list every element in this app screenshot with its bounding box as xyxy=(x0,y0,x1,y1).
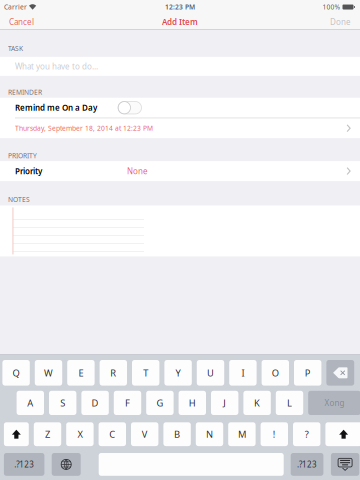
staticText: K xyxy=(254,397,260,409)
button[interactable]: A xyxy=(17,391,44,415)
button[interactable]: T xyxy=(132,360,159,386)
staticText: G xyxy=(156,397,163,409)
button[interactable]: B xyxy=(163,422,191,446)
button[interactable]: Delete xyxy=(326,360,354,386)
button[interactable]: S xyxy=(49,391,76,415)
staticText: F xyxy=(125,397,130,409)
staticText: A xyxy=(27,397,33,409)
staticText: Done xyxy=(330,17,351,27)
button[interactable]: ! xyxy=(261,422,288,446)
staticText: TASK xyxy=(8,44,23,53)
staticText: V xyxy=(142,428,148,440)
staticText: R xyxy=(110,367,116,379)
button[interactable]: Q xyxy=(2,360,30,386)
button[interactable]: M xyxy=(228,422,256,446)
staticText: J xyxy=(223,397,226,409)
staticText: N xyxy=(206,428,213,440)
button[interactable]: W xyxy=(35,360,62,386)
staticText: What you have to do... xyxy=(15,61,98,72)
staticText: Add Item xyxy=(162,17,198,27)
staticText: L xyxy=(287,397,292,409)
staticText: REMINDER xyxy=(8,88,42,97)
button[interactable]: .?123 xyxy=(4,453,44,476)
staticText: .?123 xyxy=(297,459,317,470)
button[interactable]: P xyxy=(294,360,321,386)
staticText: O xyxy=(272,367,279,379)
staticText: S xyxy=(60,397,65,409)
button[interactable]: J xyxy=(211,391,238,415)
button[interactable]: X xyxy=(66,422,94,446)
staticText: None xyxy=(127,166,148,176)
staticText: M xyxy=(238,428,246,440)
staticText: Xong xyxy=(324,398,344,408)
button[interactable]: Shift xyxy=(4,422,29,446)
button[interactable]: .?123 xyxy=(291,453,323,476)
button[interactable]: D xyxy=(81,391,109,415)
button[interactable]: K xyxy=(243,391,271,415)
staticText: E xyxy=(78,367,83,379)
staticText: PRIORITY xyxy=(8,151,37,160)
staticText: Y xyxy=(176,367,181,379)
button[interactable]: O xyxy=(262,360,289,386)
button[interactable]: L xyxy=(276,391,303,415)
button[interactable]: Hide keyboard xyxy=(331,453,359,476)
button[interactable]: I xyxy=(229,360,257,386)
button[interactable]: N xyxy=(196,422,223,446)
button[interactable]: F xyxy=(114,391,141,415)
button[interactable]: Cancel xyxy=(0,14,40,30)
staticText: Remind me On a Day xyxy=(15,102,97,113)
button[interactable]: Shift xyxy=(325,422,360,446)
button[interactable]: Xong xyxy=(308,391,360,415)
staticText: 100% xyxy=(322,3,340,11)
staticText: C xyxy=(109,428,115,440)
staticText: Q xyxy=(13,367,20,379)
staticText: U xyxy=(207,367,214,379)
staticText: Carrier xyxy=(4,3,27,11)
staticText: NOTES xyxy=(8,195,30,204)
staticText: D xyxy=(92,397,99,409)
button[interactable]: G xyxy=(146,391,174,415)
staticText: 12:23 PM xyxy=(165,3,195,11)
button[interactable]: R xyxy=(100,360,127,386)
button[interactable]: ? xyxy=(293,422,320,446)
button[interactable]: Next keyboard xyxy=(52,453,81,476)
staticText: I xyxy=(241,367,244,379)
button[interactable]: C xyxy=(99,422,126,446)
button[interactable]: Priority xyxy=(0,161,360,181)
button[interactable]: V xyxy=(131,422,158,446)
button[interactable]: Z xyxy=(34,422,61,446)
staticText: B xyxy=(174,428,180,440)
button[interactable]: Done xyxy=(324,14,360,30)
staticText: H xyxy=(189,397,196,409)
staticText: Cancel xyxy=(9,17,34,27)
staticText: Priority xyxy=(15,166,42,176)
staticText: T xyxy=(143,367,148,379)
staticText: P xyxy=(305,367,311,379)
button[interactable]: Thursday, September 18, 2014 at 12:23 PM xyxy=(0,118,360,138)
button[interactable]: H xyxy=(179,391,206,415)
button[interactable]: E xyxy=(67,360,95,386)
staticText: .?123 xyxy=(14,459,34,470)
staticText: X xyxy=(77,428,82,440)
staticText: Thursday, September 18, 2014 at 12:23 PM xyxy=(15,124,153,133)
button[interactable]: U xyxy=(197,360,224,386)
staticText: W xyxy=(44,367,53,379)
button[interactable]: Remind me on a day xyxy=(118,101,141,114)
button[interactable]: Y xyxy=(164,360,192,386)
staticText: ? xyxy=(305,428,309,440)
staticText: ! xyxy=(273,428,276,440)
staticText: Z xyxy=(45,428,50,440)
